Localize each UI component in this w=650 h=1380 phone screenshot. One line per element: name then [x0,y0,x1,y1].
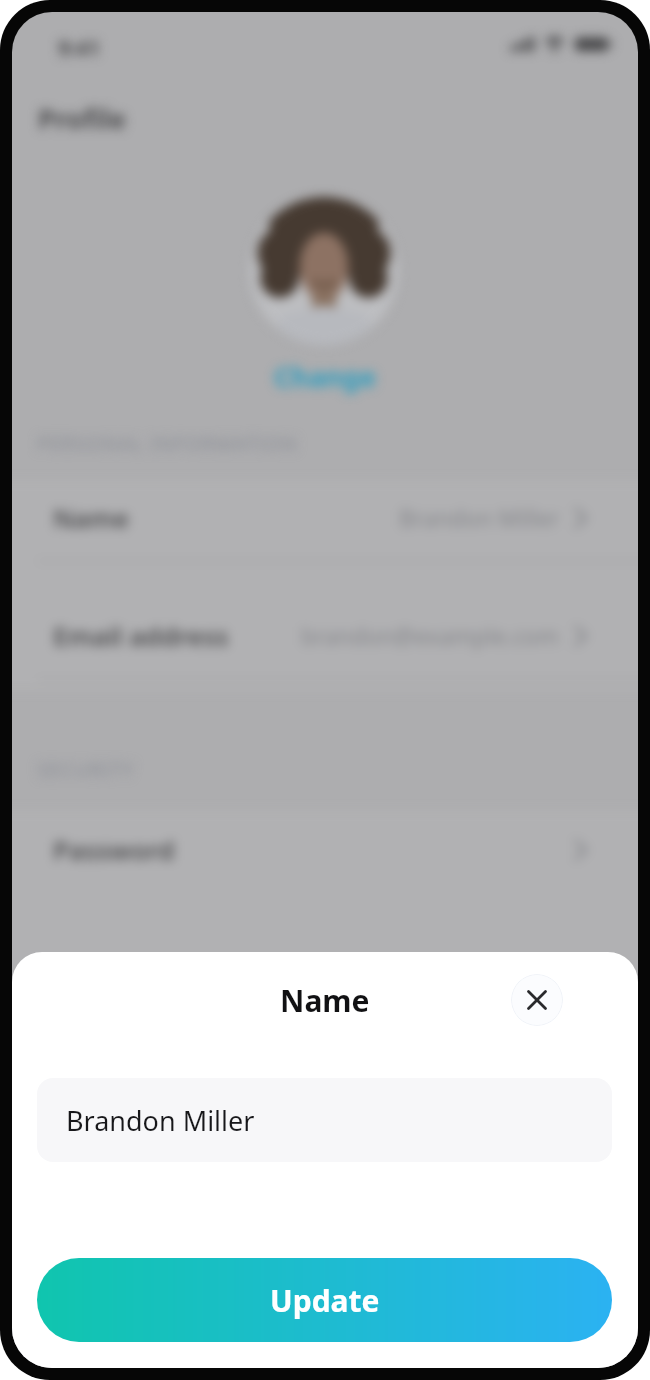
staticText: 9:41 [58,34,100,63]
button[interactable]: Password [53,812,588,887]
button[interactable]: Update [37,1258,612,1342]
staticText: brandon@example.com [301,620,560,651]
staticText: Name [53,500,129,535]
staticText: Password [53,832,175,867]
staticText: Profile [38,100,126,137]
staticText: Brandon Miller [66,1102,255,1139]
staticText: Change [274,358,376,395]
button[interactable]: Brandon Miller [37,1078,612,1162]
staticText: Update [270,1280,380,1321]
button[interactable]: Name [53,480,588,555]
staticText: Name [280,980,370,1021]
button[interactable] [511,974,563,1026]
button[interactable]: Change [12,358,638,395]
staticText: Brandon Miller [399,502,560,533]
staticText: Email address [53,618,229,653]
button[interactable]: Email address [53,598,588,673]
